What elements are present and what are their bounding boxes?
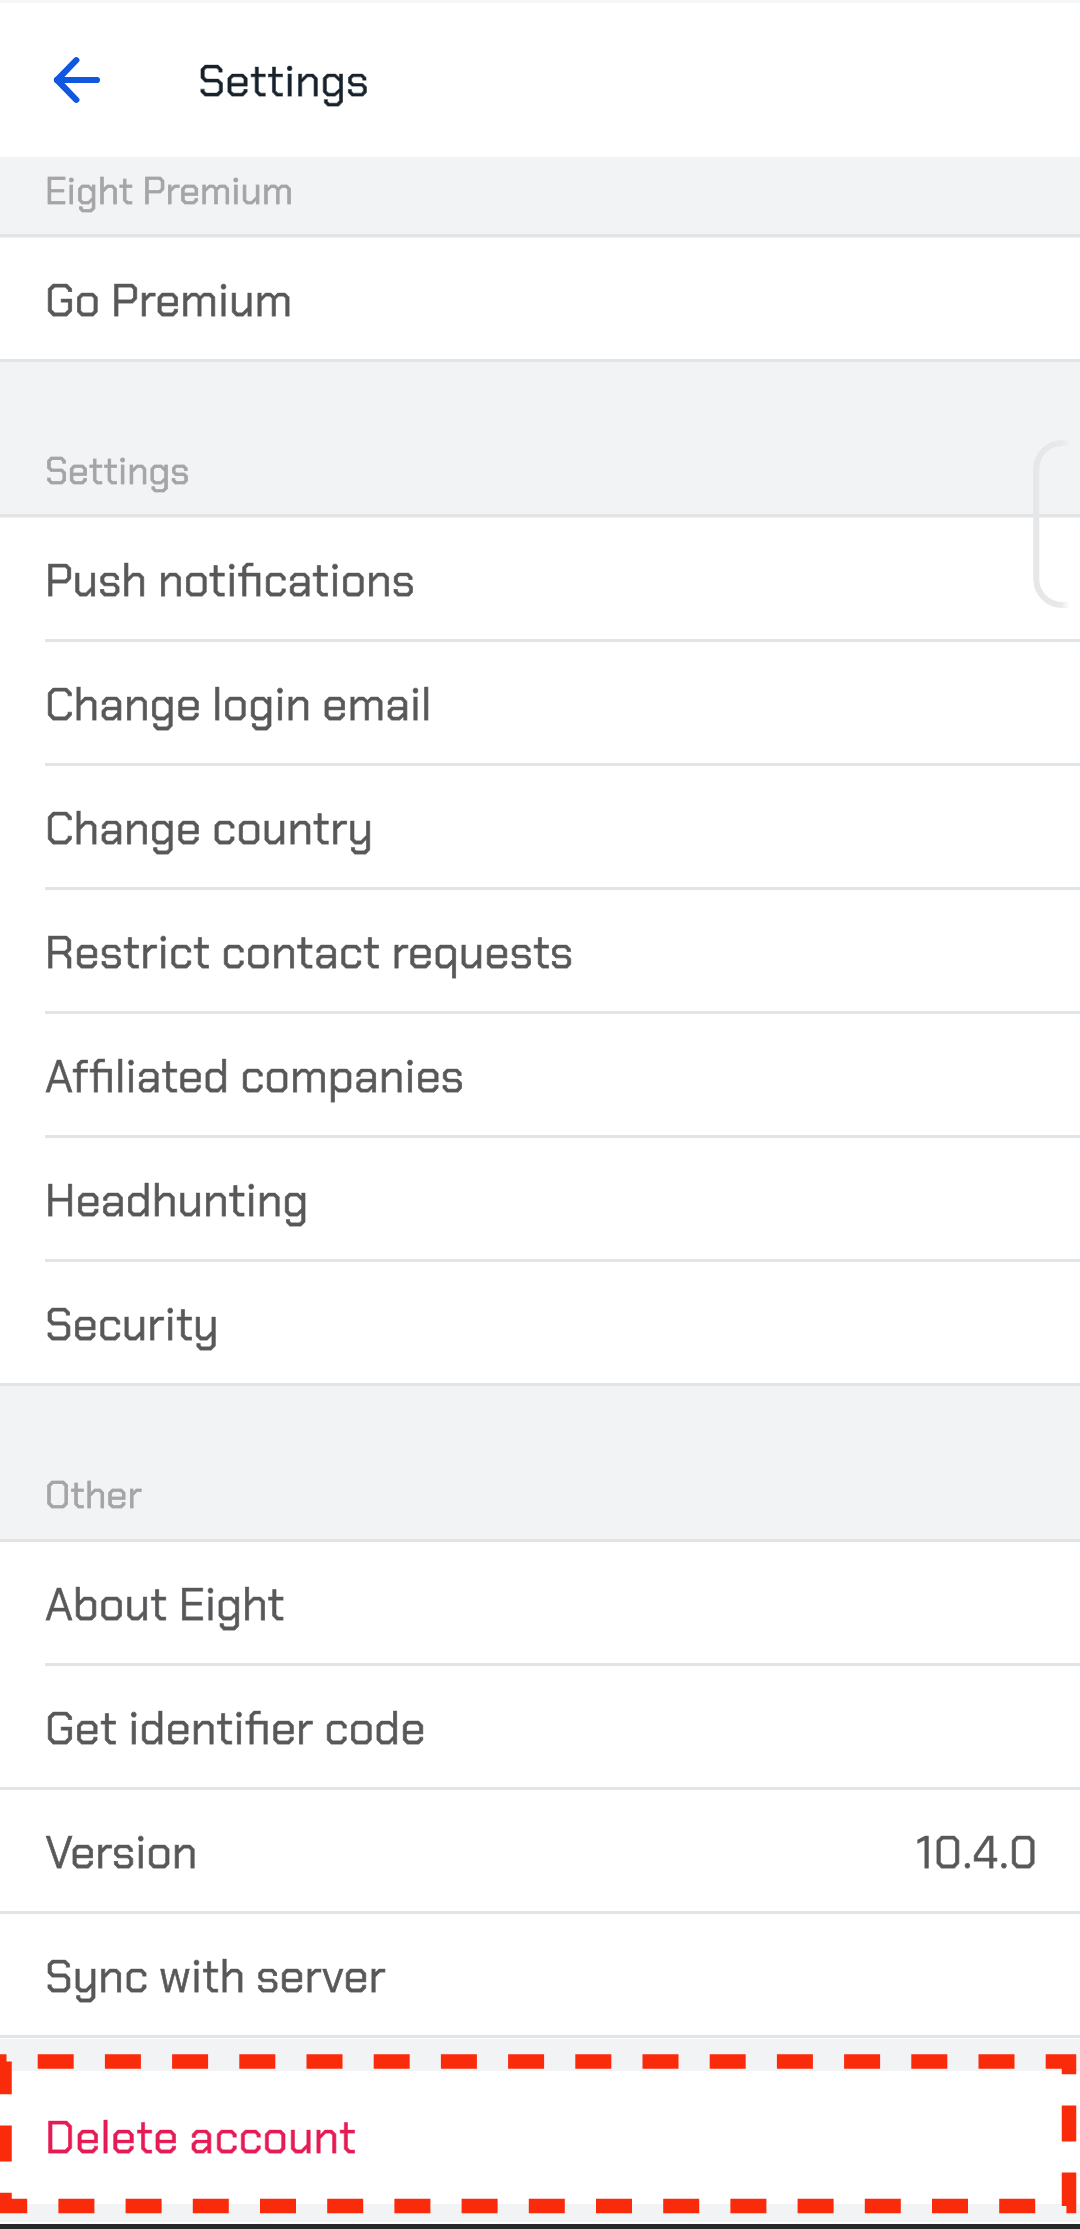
button[interactable]: Push notifications <box>0 518 1080 642</box>
button[interactable]: Restrict contact requests <box>0 890 1080 1014</box>
button[interactable]: Back <box>22 25 132 135</box>
staticText: Affiliated companies <box>45 1047 464 1106</box>
staticText: Security <box>45 1295 219 1354</box>
button[interactable]: Version <box>0 1790 1080 1914</box>
staticText: Other <box>45 1471 142 1520</box>
button[interactable]: Affiliated companies <box>0 1014 1080 1138</box>
staticText: Push notifications <box>45 551 415 610</box>
staticText: About Eight <box>45 1575 285 1634</box>
button[interactable]: Go Premium <box>0 238 1080 363</box>
button[interactable]: Delete account <box>0 2071 1080 2204</box>
button[interactable]: Change country <box>0 766 1080 890</box>
staticText: Settings <box>45 447 190 496</box>
staticText: Eight Premium <box>45 167 294 216</box>
button[interactable]: About Eight <box>0 1542 1080 1666</box>
button[interactable]: Change login email <box>0 642 1080 766</box>
staticText: Restrict contact requests <box>45 923 574 982</box>
staticText: Sync with server <box>45 1947 386 2006</box>
staticText: Settings <box>198 52 369 110</box>
button[interactable]: Headhunting <box>0 1138 1080 1262</box>
staticText: Get identifier code <box>45 1699 426 1758</box>
staticText: Go Premium <box>45 271 293 330</box>
staticText: Headhunting <box>45 1171 309 1230</box>
staticText: Delete account <box>45 2108 357 2167</box>
staticText: Eight Premium <box>45 167 294 216</box>
staticText: Restrict contact requests <box>45 923 574 982</box>
button[interactable]: Get identifier code <box>0 1666 1080 1791</box>
staticText: 10.4.0 <box>916 1823 1039 1882</box>
staticText: Change country <box>45 799 374 858</box>
staticText: Push notifications <box>45 551 415 610</box>
staticText: Change login email <box>45 675 432 734</box>
staticText: 10.4.0 <box>916 1823 1039 1882</box>
staticText: Settings <box>45 447 190 496</box>
staticText: Affiliated companies <box>45 1047 464 1106</box>
button[interactable]: Sync with server <box>0 1914 1080 2039</box>
staticText: Other <box>45 1471 142 1520</box>
staticText: Version <box>45 1823 198 1882</box>
staticText: Delete account <box>45 2108 357 2167</box>
button[interactable]: Security <box>0 1262 1080 1386</box>
staticText: Security <box>45 1295 219 1354</box>
staticText: Change login email <box>45 675 432 734</box>
staticText: Headhunting <box>45 1171 309 1230</box>
staticText: Change country <box>45 799 374 858</box>
staticText: Settings <box>198 52 369 110</box>
staticText: Get identifier code <box>45 1699 426 1758</box>
staticText: About Eight <box>45 1575 285 1634</box>
staticText: Go Premium <box>45 271 293 330</box>
staticText: Version <box>45 1823 198 1882</box>
staticText: Sync with server <box>45 1947 386 2006</box>
